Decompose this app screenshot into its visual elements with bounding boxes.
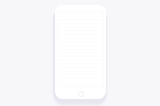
button[interactable] bbox=[78, 91, 84, 97]
